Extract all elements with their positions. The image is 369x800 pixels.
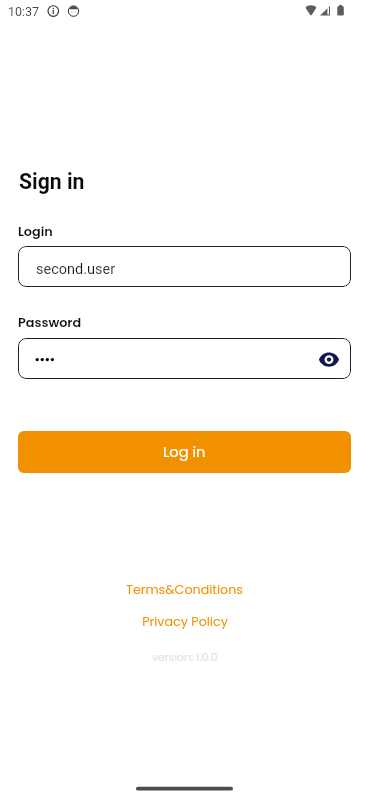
button[interactable]: second.user: [18, 246, 351, 287]
staticText: Sign in: [19, 169, 85, 194]
staticText: second.user: [36, 261, 116, 278]
button[interactable]: Log in: [18, 431, 351, 473]
staticText: 10:37: [8, 4, 40, 19]
button[interactable]: Show password: [317, 347, 341, 371]
staticText: Password: [18, 314, 82, 332]
button[interactable]: Terms&Conditions: [116, 578, 253, 602]
staticText: Login: [18, 223, 53, 241]
staticText: version: 1.0.0: [152, 650, 218, 665]
button[interactable]: Show password: [18, 338, 351, 379]
button[interactable]: Privacy Policy: [132, 610, 238, 634]
staticText: Log in: [163, 442, 206, 462]
